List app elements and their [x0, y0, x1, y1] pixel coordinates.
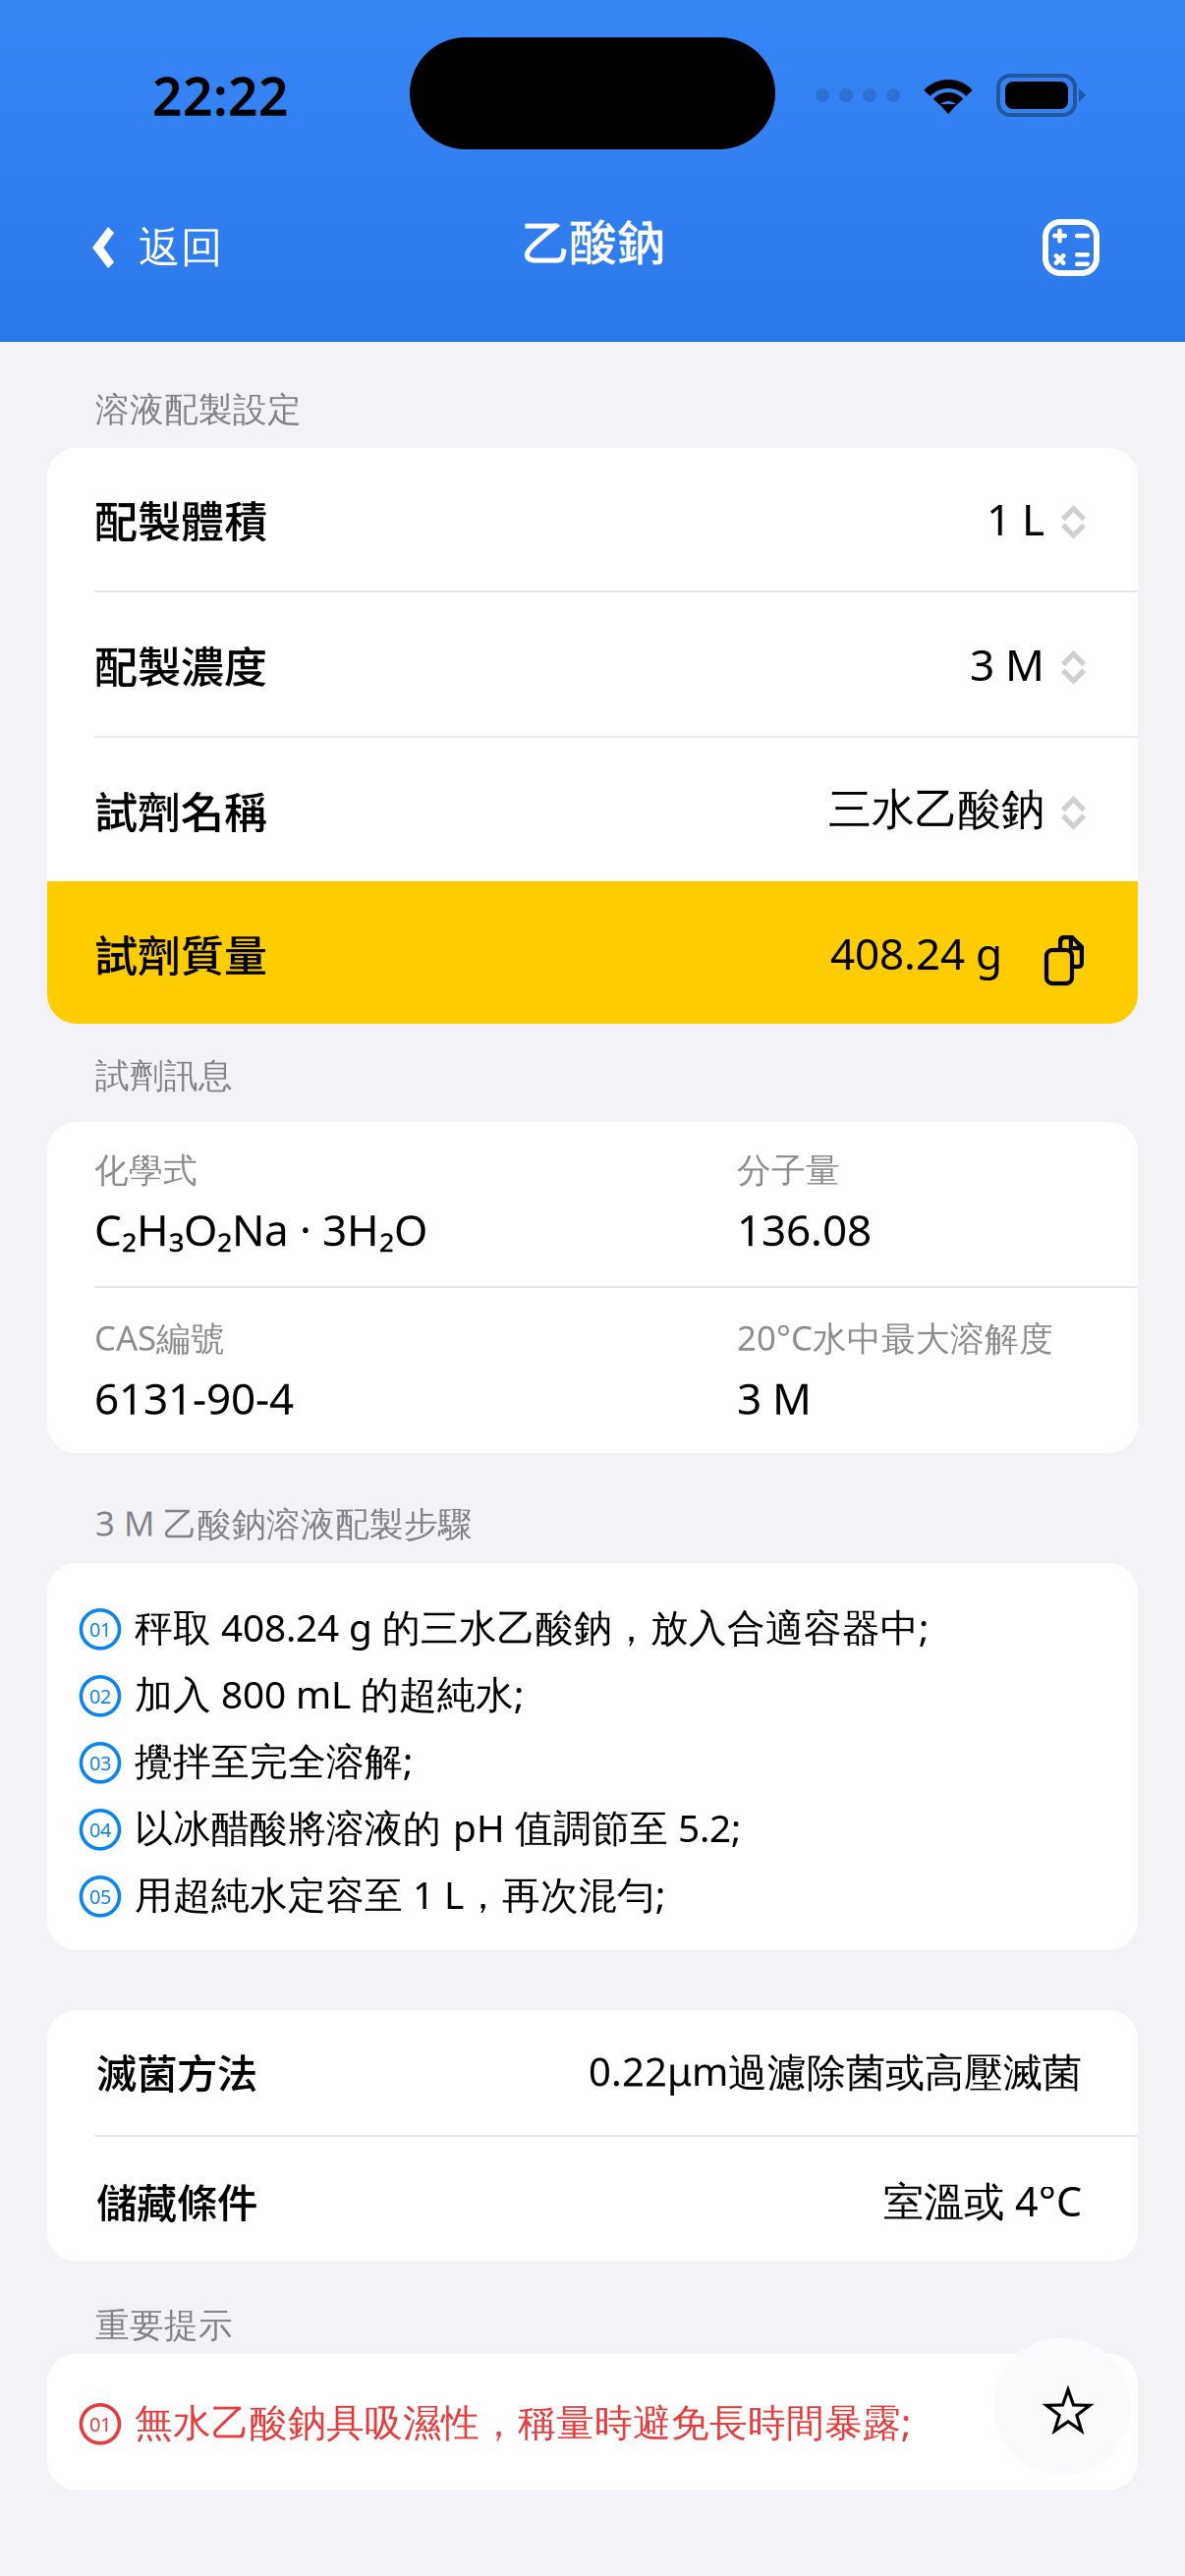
button[interactable]: 返回 — [0, 200, 247, 295]
staticText: 返回 — [139, 222, 223, 273]
staticText: 0.22μm過濾除菌或高壓滅菌 — [589, 2045, 1082, 2097]
button[interactable]: Calculator — [1044, 198, 1185, 297]
staticText: 試劑質量 — [94, 922, 267, 984]
staticText: 3 M 乙酸鈉溶液配製步驟 — [95, 1500, 473, 1546]
staticText: 分子量 — [737, 1150, 840, 1192]
staticText: 無水乙酸鈉具吸濕性，稱量時避免長時間暴露; — [135, 2397, 911, 2447]
staticText: 秤取 408.24 g 的三水乙酸鈉，放入合適容器中; — [135, 1602, 929, 1652]
staticText: 配製濃度 — [94, 633, 267, 695]
staticText: 01 — [89, 2411, 111, 2437]
staticText: 乙酸鈉 — [520, 205, 665, 275]
staticText: 408.24 g — [830, 924, 1002, 982]
staticText: 加入 800 mL 的超純水; — [135, 1669, 524, 1719]
staticText: 配製體積 — [94, 487, 267, 550]
staticText: 01 — [89, 1616, 111, 1642]
staticText: 試劑訊息 — [95, 1055, 233, 1097]
staticText: 04 — [89, 1817, 111, 1843]
staticText: 20°C水中最大溶解度 — [737, 1315, 1053, 1360]
staticText: 化學式 — [94, 1150, 197, 1192]
staticText: 用超純水定容至 1 L，再次混勻; — [135, 1869, 665, 1919]
button[interactable]: 試劑質量 — [47, 881, 1138, 1025]
staticText: 6131-90-4 — [94, 1369, 294, 1426]
staticText: C₂H₃O₂Na · 3H₂O — [94, 1201, 427, 1258]
staticText: 三水乙酸鈉 — [828, 783, 1044, 836]
staticText: 02 — [89, 1683, 111, 1709]
staticText: 1 L — [987, 490, 1044, 547]
staticText: 3 M — [737, 1369, 812, 1426]
staticText: 以冰醋酸將溶液的 pH 值調節至 5.2; — [135, 1802, 741, 1853]
button[interactable]: 試劑名稱 — [47, 738, 1138, 881]
staticText: 03 — [89, 1750, 111, 1776]
staticText: 重要提示 — [95, 2305, 233, 2347]
staticText: 攪拌至完全溶解; — [135, 1735, 413, 1786]
staticText: 試劑名稱 — [94, 778, 267, 841]
button[interactable]: Favourite — [993, 2338, 1131, 2475]
staticText: 3 M — [970, 635, 1044, 693]
staticText: 室溫或 4°C — [883, 2174, 1082, 2228]
button[interactable]: 配製濃度 — [47, 592, 1138, 736]
staticText: 22:22 — [152, 61, 289, 130]
staticText: 儲藏條件 — [96, 2171, 257, 2230]
staticText: 05 — [89, 1883, 111, 1910]
staticText: 溶液配製設定 — [95, 389, 302, 431]
staticText: CAS編號 — [94, 1315, 225, 1360]
staticText: 136.08 — [737, 1201, 872, 1258]
staticText: 滅菌方法 — [96, 2042, 257, 2100]
button[interactable]: 配製體積 — [47, 447, 1138, 590]
